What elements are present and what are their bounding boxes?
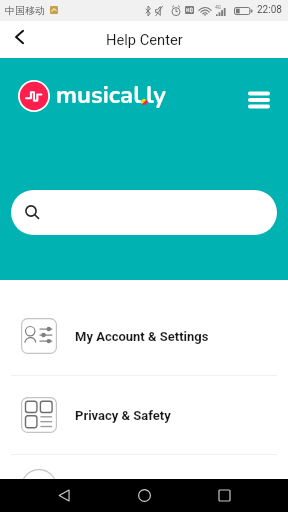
button[interactable]: Back xyxy=(0,21,38,53)
staticText: ly xyxy=(146,79,166,112)
staticText: musical xyxy=(56,79,141,112)
button[interactable]: Content & Copyright xyxy=(0,461,288,512)
staticText: My Account & Settings xyxy=(75,329,209,344)
staticText: 中国移动 xyxy=(5,4,45,17)
button[interactable] xyxy=(11,190,277,235)
button[interactable]: Recent apps xyxy=(208,479,241,512)
button[interactable]: Menu xyxy=(242,83,275,116)
button[interactable]: Home xyxy=(128,479,161,512)
staticText: Help Center xyxy=(106,31,183,48)
button[interactable]: Privacy & Safety xyxy=(0,376,288,454)
staticText: Privacy & Safety xyxy=(75,408,171,423)
staticText: 4G xyxy=(215,4,222,10)
button[interactable]: My Account & Settings xyxy=(0,297,288,375)
button[interactable]: Back xyxy=(47,479,80,512)
staticText: Content & Copyright xyxy=(75,479,194,494)
staticText: 22:08 xyxy=(257,4,282,16)
